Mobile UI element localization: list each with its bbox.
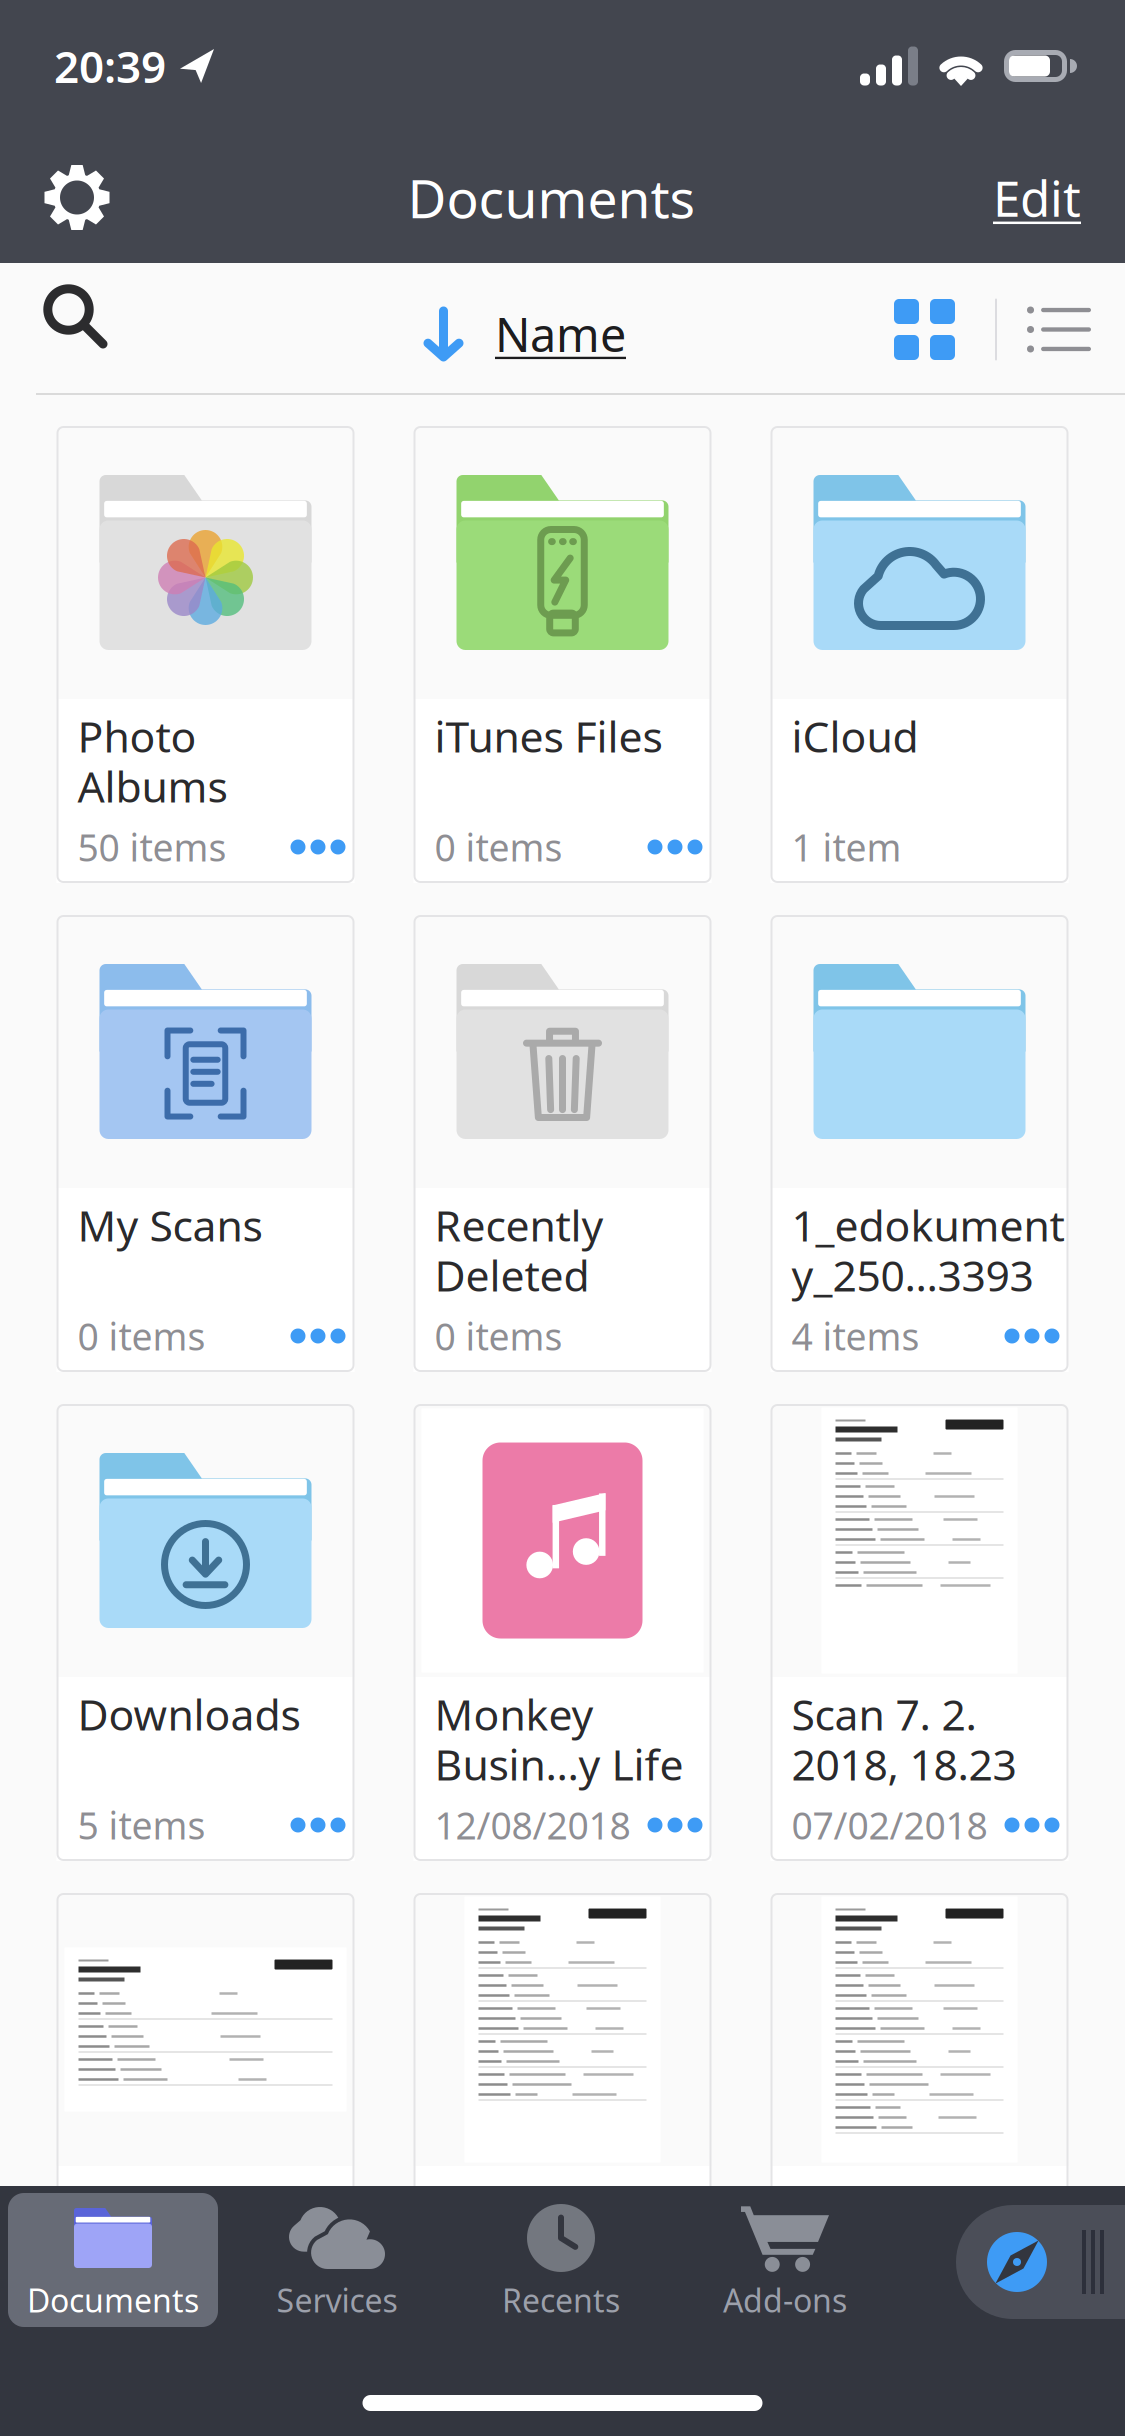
button[interactable]: List view	[997, 282, 1091, 376]
staticText: My Scans	[77, 1197, 262, 1253]
button[interactable]: Search	[30, 267, 122, 367]
staticText: Recents	[502, 2279, 620, 2321]
button[interactable]: iCloud	[770, 426, 1068, 883]
staticText: 50 items	[77, 822, 226, 872]
button[interactable]: My Scans	[56, 915, 354, 1372]
button[interactable]	[413, 1893, 711, 2350]
staticText: Busin...y Life	[434, 1736, 683, 1792]
staticText: Documents	[27, 2279, 199, 2321]
staticText: 12/08/2018	[434, 1800, 630, 1850]
staticText: Documents	[407, 162, 695, 233]
button[interactable]: Downloads	[56, 1404, 354, 1861]
button[interactable]: iTunes Files	[413, 426, 711, 883]
staticText: Recently	[434, 1197, 603, 1253]
button[interactable]: Grid view	[876, 281, 995, 378]
button[interactable]: Add-ons	[680, 2193, 890, 2327]
button[interactable]: Recently	[413, 915, 711, 1372]
button[interactable]	[56, 1893, 354, 2350]
staticText: 1_edokument	[791, 1197, 1064, 1253]
button[interactable]: Documents	[8, 2193, 218, 2327]
staticText: Name	[495, 303, 626, 365]
staticText: iTunes Files	[434, 708, 662, 764]
button[interactable]: Monkey	[413, 1404, 711, 1861]
button[interactable]: Name	[414, 287, 640, 381]
staticText: 0 items	[434, 1311, 562, 1361]
button[interactable]: Photo	[56, 426, 354, 883]
staticText: Photo	[77, 708, 196, 764]
staticText: 0 items	[77, 1311, 205, 1361]
button[interactable]	[770, 1893, 1068, 2350]
staticText: 07/02/2018	[791, 1800, 987, 1850]
staticText: Downloads	[77, 1686, 300, 1742]
staticText: 4 items	[791, 1311, 919, 1361]
button[interactable]: Edit	[973, 149, 1101, 246]
staticText: 2018, 18.23	[791, 1736, 1016, 1792]
staticText: Scan 7. 2.	[791, 1686, 976, 1742]
staticText: 5 items	[77, 1800, 205, 1850]
staticText: y_250...3393	[791, 1247, 1033, 1303]
button[interactable]: Browser	[956, 2205, 1125, 2319]
staticText: Monkey	[434, 1686, 593, 1742]
staticText: 20:39	[54, 37, 166, 95]
staticText: Deleted	[434, 1247, 589, 1303]
button[interactable]: Scan 7. 2.	[770, 1404, 1068, 1861]
staticText: Edit	[993, 165, 1081, 230]
staticText: Services	[276, 2279, 397, 2321]
staticText: 0 items	[434, 822, 562, 872]
button[interactable]: Recents	[456, 2193, 666, 2327]
button[interactable]: Settings	[24, 146, 130, 248]
button[interactable]: Services	[232, 2193, 442, 2327]
staticText: 1 item	[791, 822, 901, 872]
button[interactable]: 1_edokument	[770, 915, 1068, 1372]
staticText: Add-ons	[723, 2279, 847, 2321]
staticText: Albums	[77, 758, 227, 814]
staticText: iCloud	[791, 708, 918, 764]
